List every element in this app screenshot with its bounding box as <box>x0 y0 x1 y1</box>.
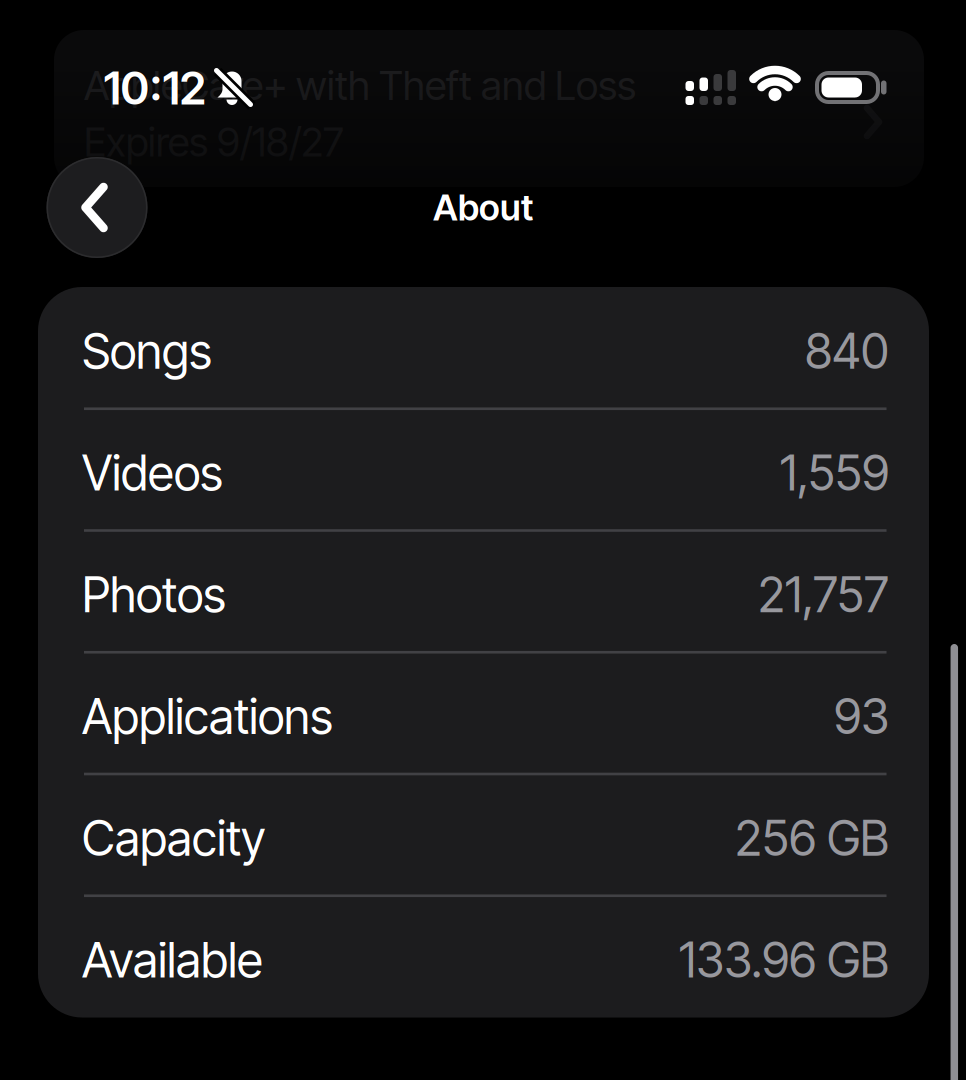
staticText: 21,757 <box>758 567 889 623</box>
staticText: Capacity <box>82 810 265 867</box>
staticText: Songs <box>82 323 212 380</box>
staticText: 10:12 <box>103 61 205 115</box>
staticText: Photos <box>82 567 226 623</box>
staticText: Expires 9/18/27 <box>84 118 344 166</box>
staticText: 256 GB <box>735 810 889 867</box>
staticText: 1,559 <box>780 445 889 501</box>
staticText: Available <box>82 932 263 988</box>
staticText: 840 <box>805 323 889 380</box>
staticText: Videos <box>82 445 223 501</box>
staticText: 93 <box>834 688 889 745</box>
staticText: About <box>433 186 533 229</box>
staticText: AppleCare+ with Theft and Loss <box>84 62 636 109</box>
staticText: Applications <box>82 688 333 745</box>
staticText: 133.96 GB <box>679 932 889 988</box>
